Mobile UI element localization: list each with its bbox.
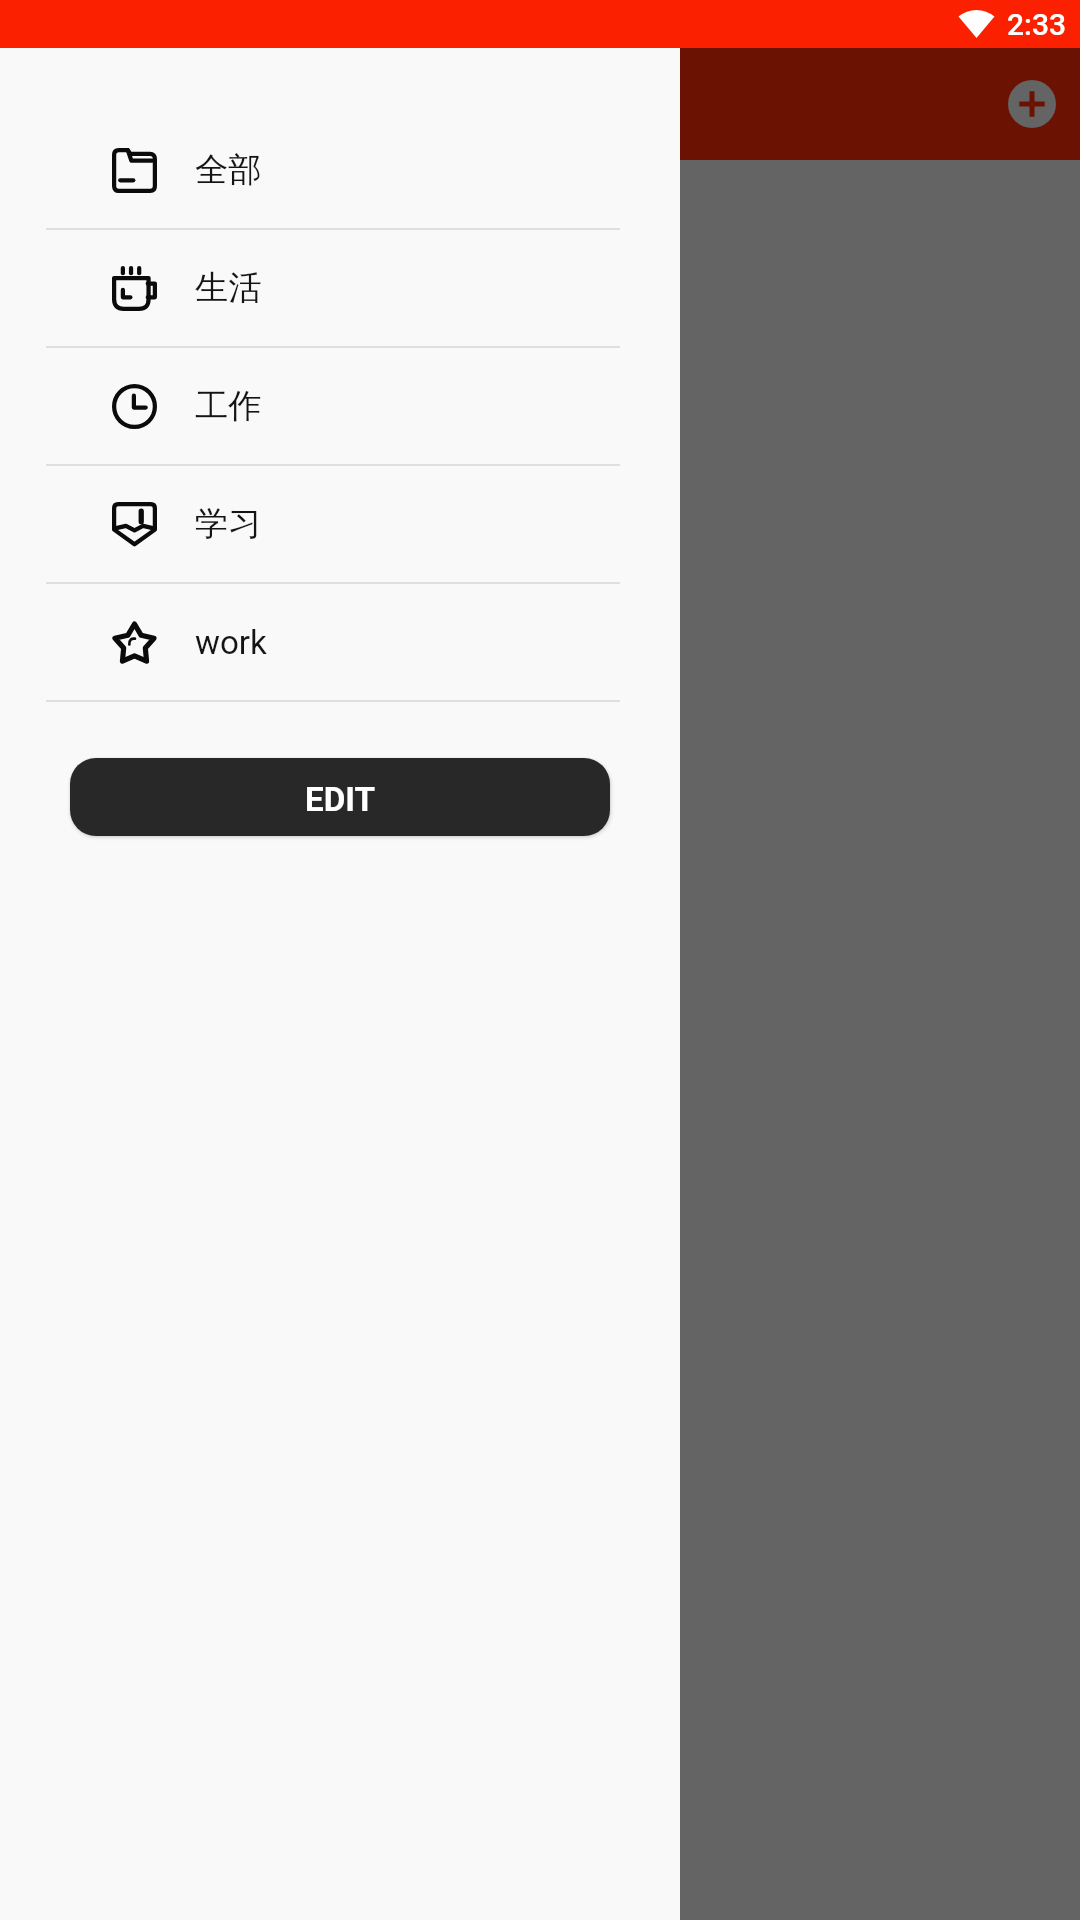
button[interactable]: 工作 (0, 348, 680, 464)
button[interactable]: 全部 (0, 112, 680, 228)
staticText: 工作 (195, 385, 262, 427)
staticText: 2:33 (1007, 7, 1067, 42)
button[interactable]: work (0, 584, 680, 700)
staticText: work (195, 623, 267, 662)
staticText: EDIT (305, 780, 376, 819)
button[interactable]: 生活 (0, 230, 680, 346)
button[interactable]: Add (1008, 80, 1056, 128)
staticText: 全部 (195, 149, 262, 191)
button[interactable]: 学习 (0, 466, 680, 582)
staticText: 学习 (195, 503, 262, 545)
staticText: 生活 (195, 267, 262, 309)
button[interactable]: EDIT (70, 758, 610, 836)
